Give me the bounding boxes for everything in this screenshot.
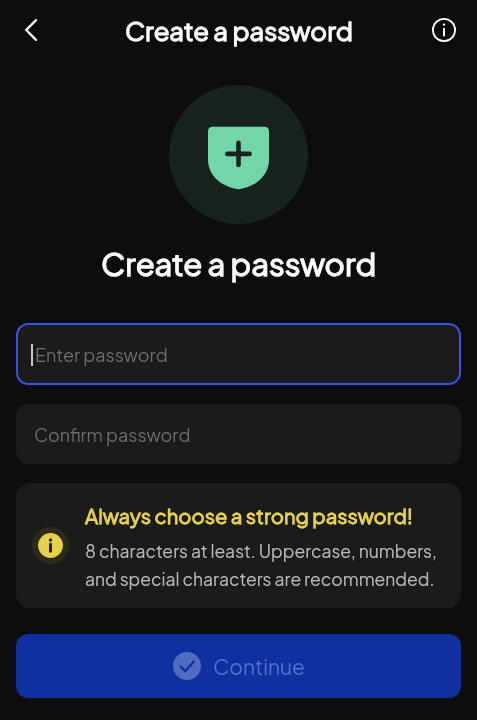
button[interactable]: Enter password [16, 323, 461, 385]
staticText: Always choose a strong password! [85, 503, 413, 528]
staticText: Create a password [0, 244, 477, 283]
staticText: Enter password [35, 343, 168, 366]
button[interactable]: Back [9, 8, 53, 52]
staticText: Confirm password [34, 423, 191, 446]
staticText: 8 characters at least. Uppercase, number… [85, 540, 447, 590]
staticText: Continue [213, 653, 305, 679]
button[interactable]: Confirm password [16, 404, 461, 464]
button[interactable]: Continue [16, 634, 461, 698]
button[interactable]: Info [422, 8, 466, 52]
staticText: Create a password [125, 14, 353, 46]
